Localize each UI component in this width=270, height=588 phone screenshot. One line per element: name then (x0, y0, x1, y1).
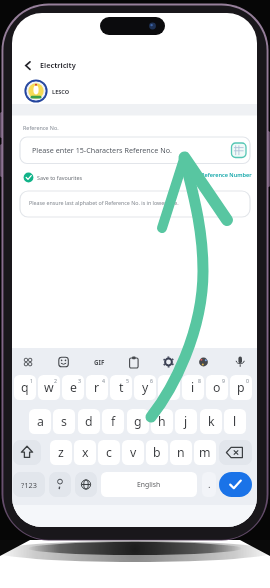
staticText: i (191, 379, 195, 396)
button[interactable] (160, 354, 176, 370)
button[interactable]: English (101, 472, 197, 497)
staticText: j (184, 413, 188, 430)
button[interactable]: i (182, 375, 204, 400)
staticText: a (37, 413, 44, 430)
staticText: ?123 (21, 480, 37, 490)
staticText: m (199, 444, 211, 461)
button[interactable] (230, 141, 248, 159)
button[interactable]: g (127, 409, 149, 434)
button[interactable]: . (202, 472, 216, 497)
button[interactable]: q (14, 375, 36, 400)
button[interactable] (49, 472, 71, 497)
staticText: n (177, 444, 185, 461)
button[interactable]: f (102, 409, 124, 434)
staticText: w (44, 379, 54, 396)
button[interactable] (125, 354, 141, 370)
staticText: 8 (198, 377, 201, 384)
staticText: English (137, 480, 161, 489)
button[interactable]: x (74, 440, 96, 465)
staticText: y (142, 379, 149, 396)
staticText: x (82, 444, 89, 461)
button[interactable] (219, 472, 252, 497)
staticText: LESCO (52, 88, 70, 96)
button[interactable] (219, 440, 252, 465)
staticText: r (94, 379, 100, 396)
button[interactable]: t (110, 375, 132, 400)
button[interactable]: l (224, 409, 246, 434)
button[interactable]: d (78, 409, 100, 434)
button[interactable]: z (50, 440, 72, 465)
staticText: Electricity (40, 60, 76, 70)
button[interactable]: o (206, 375, 228, 400)
staticText: d (85, 413, 93, 430)
button[interactable]: m (194, 440, 216, 465)
staticText: u (165, 379, 173, 396)
button[interactable]: b (146, 440, 168, 465)
button[interactable]: p (230, 375, 252, 400)
button[interactable]: v (122, 440, 144, 465)
staticText: c (106, 444, 112, 461)
button[interactable] (13, 440, 41, 465)
staticText: Reference No. (23, 124, 59, 131)
staticText: 6 (150, 377, 153, 384)
staticText: e (70, 379, 77, 396)
staticText: f (111, 413, 116, 430)
staticText: Please enter 15-Characters Reference No. (32, 145, 172, 155)
button[interactable]: u (158, 375, 180, 400)
staticText: s (61, 413, 67, 430)
staticText: 1 (30, 377, 33, 384)
staticText: 3 (78, 377, 81, 384)
button[interactable]: GIF (88, 355, 110, 369)
staticText: g (134, 413, 142, 430)
button[interactable]: h (151, 409, 173, 434)
button[interactable] (22, 57, 38, 74)
staticText: GIF (94, 358, 105, 366)
staticText: p (237, 379, 245, 396)
staticText: Save to favourites (37, 174, 83, 181)
button[interactable]: k (200, 409, 222, 434)
button[interactable] (75, 472, 97, 497)
button[interactable] (232, 354, 248, 370)
button[interactable] (55, 354, 71, 370)
button[interactable]: Reference Number (196, 169, 252, 181)
staticText: z (58, 444, 64, 461)
button[interactable] (12, 76, 257, 105)
button[interactable]: w (38, 375, 60, 400)
staticText: o (213, 379, 221, 396)
staticText: k (208, 413, 215, 430)
button[interactable]: r (86, 375, 108, 400)
staticText: Please ensure last alphabet of Reference… (29, 199, 179, 206)
staticText: t (119, 379, 124, 396)
button[interactable] (20, 137, 250, 164)
staticText: l (233, 413, 237, 430)
button[interactable]: e (62, 375, 84, 400)
button[interactable]: n (170, 440, 192, 465)
button[interactable]: y (134, 375, 156, 400)
staticText: 4 (102, 377, 105, 384)
staticText: v (130, 444, 137, 461)
button[interactable]: j (175, 409, 197, 434)
button[interactable] (195, 354, 211, 370)
button[interactable] (20, 354, 36, 370)
staticText: h (158, 413, 166, 430)
staticText: b (153, 444, 161, 461)
staticText: 2 (54, 377, 57, 384)
staticText: 5 (126, 377, 129, 384)
button[interactable]: a (29, 409, 51, 434)
button[interactable] (20, 169, 95, 186)
button[interactable]: s (53, 409, 75, 434)
button[interactable]: ?123 (13, 472, 45, 497)
button[interactable]: c (98, 440, 120, 465)
staticText: 9 (222, 377, 225, 384)
staticText: q (21, 379, 29, 396)
staticText: Reference Number (201, 171, 252, 179)
staticText: . (208, 478, 211, 491)
staticText: 0 (246, 377, 249, 384)
